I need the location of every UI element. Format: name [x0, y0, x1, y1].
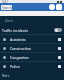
- button[interactable]: Search: [1, 5, 12, 10]
- staticText: More: [2, 74, 10, 78]
- staticText: Search: [2, 6, 12, 10]
- button[interactable]: Police: [0, 62, 64, 70]
- button[interactable]: Construction: [0, 44, 64, 52]
- staticText: 9:41: [2, 0, 8, 3]
- staticText: Congestion: [10, 55, 29, 60]
- button[interactable]: Messages: [56, 4, 62, 10]
- staticText: Construction: [10, 46, 32, 51]
- staticText: Alerts: [5, 19, 14, 23]
- button[interactable]: Traffic incidents: [0, 26, 64, 34]
- button[interactable]: Accidents: [0, 35, 64, 43]
- staticText: Police: [10, 64, 20, 69]
- button[interactable]: Layers: [49, 4, 55, 10]
- staticText: Traffic incidents: [2, 28, 28, 33]
- staticText: Accidents: [10, 37, 26, 42]
- button[interactable]: Congestion: [0, 53, 64, 61]
